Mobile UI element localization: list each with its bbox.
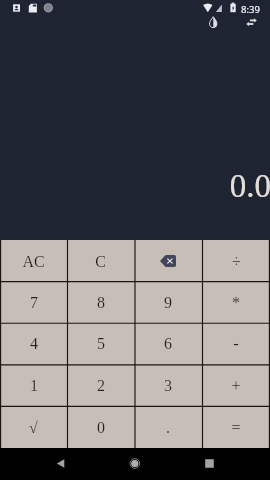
staticText: AC xyxy=(22,253,45,271)
staticText: 7 xyxy=(30,294,38,312)
staticText: - xyxy=(233,335,239,353)
button[interactable]: 2 xyxy=(67,364,134,406)
staticText: 0 xyxy=(97,419,105,437)
button[interactable]: - xyxy=(202,322,270,364)
staticText: . xyxy=(166,419,170,437)
button[interactable]: Home xyxy=(90,448,180,480)
button[interactable]: √ xyxy=(0,406,67,448)
button[interactable]: + xyxy=(202,364,270,406)
staticText: * xyxy=(232,294,240,312)
staticText: = xyxy=(231,419,241,437)
button[interactable]: 3 xyxy=(134,364,202,406)
button[interactable]: 8 xyxy=(67,281,134,322)
button[interactable]: * xyxy=(202,281,270,322)
button[interactable]: ÷ xyxy=(202,240,270,281)
staticText: C xyxy=(95,253,106,271)
button[interactable]: 4 xyxy=(0,322,67,364)
button[interactable]: 7 xyxy=(0,281,67,322)
staticText: ÷ xyxy=(232,253,241,271)
staticText: 5 xyxy=(97,335,105,353)
button[interactable]: 1 xyxy=(0,364,67,406)
staticText: 6 xyxy=(164,335,172,353)
button[interactable]: 9 xyxy=(134,281,202,322)
button[interactable]: 0 xyxy=(67,406,134,448)
staticText: 3 xyxy=(164,377,172,395)
button[interactable]: Back xyxy=(0,448,90,480)
staticText: 1 xyxy=(30,377,38,395)
staticText: 9 xyxy=(164,294,172,312)
button[interactable]: AC xyxy=(0,240,67,281)
button[interactable]: Backspace xyxy=(134,240,202,281)
staticText: 8 xyxy=(97,294,105,312)
staticText: 0.0 xyxy=(229,168,270,205)
button[interactable]: 6 xyxy=(134,322,202,364)
staticText: + xyxy=(231,377,241,395)
button[interactable]: 5 xyxy=(67,322,134,364)
staticText: 8:39 xyxy=(241,3,260,16)
button[interactable]: . xyxy=(134,406,202,448)
button[interactable]: = xyxy=(202,406,270,448)
staticText: √ xyxy=(29,419,38,437)
button[interactable]: C xyxy=(67,240,134,281)
staticText: 2 xyxy=(97,377,105,395)
staticText: 4 xyxy=(30,335,38,353)
button[interactable]: Recent apps xyxy=(180,448,270,480)
